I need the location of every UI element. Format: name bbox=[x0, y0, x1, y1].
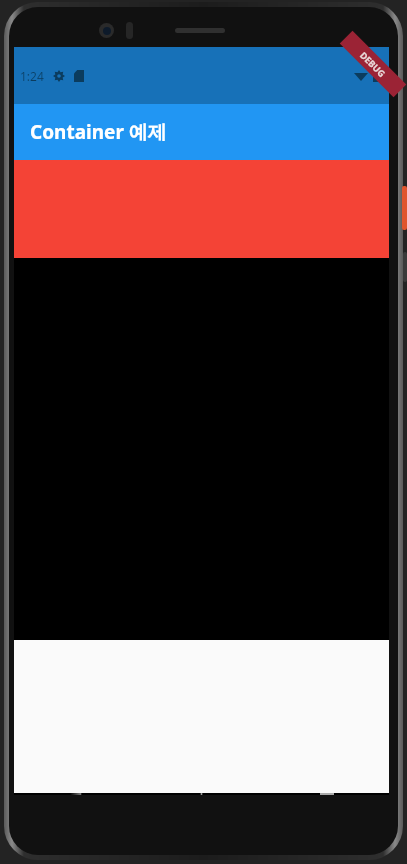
staticText: Container 예제 bbox=[30, 119, 167, 145]
button[interactable]: Home bbox=[139, 793, 264, 795]
staticText: 1:24 bbox=[20, 68, 44, 84]
button[interactable]: Recents bbox=[264, 793, 389, 795]
button[interactable]: Container 예제 bbox=[14, 104, 389, 160]
button[interactable]: Back bbox=[14, 793, 139, 795]
button[interactable]: Debug banner bbox=[313, 47, 389, 123]
staticText: DEBUG bbox=[342, 33, 404, 95]
